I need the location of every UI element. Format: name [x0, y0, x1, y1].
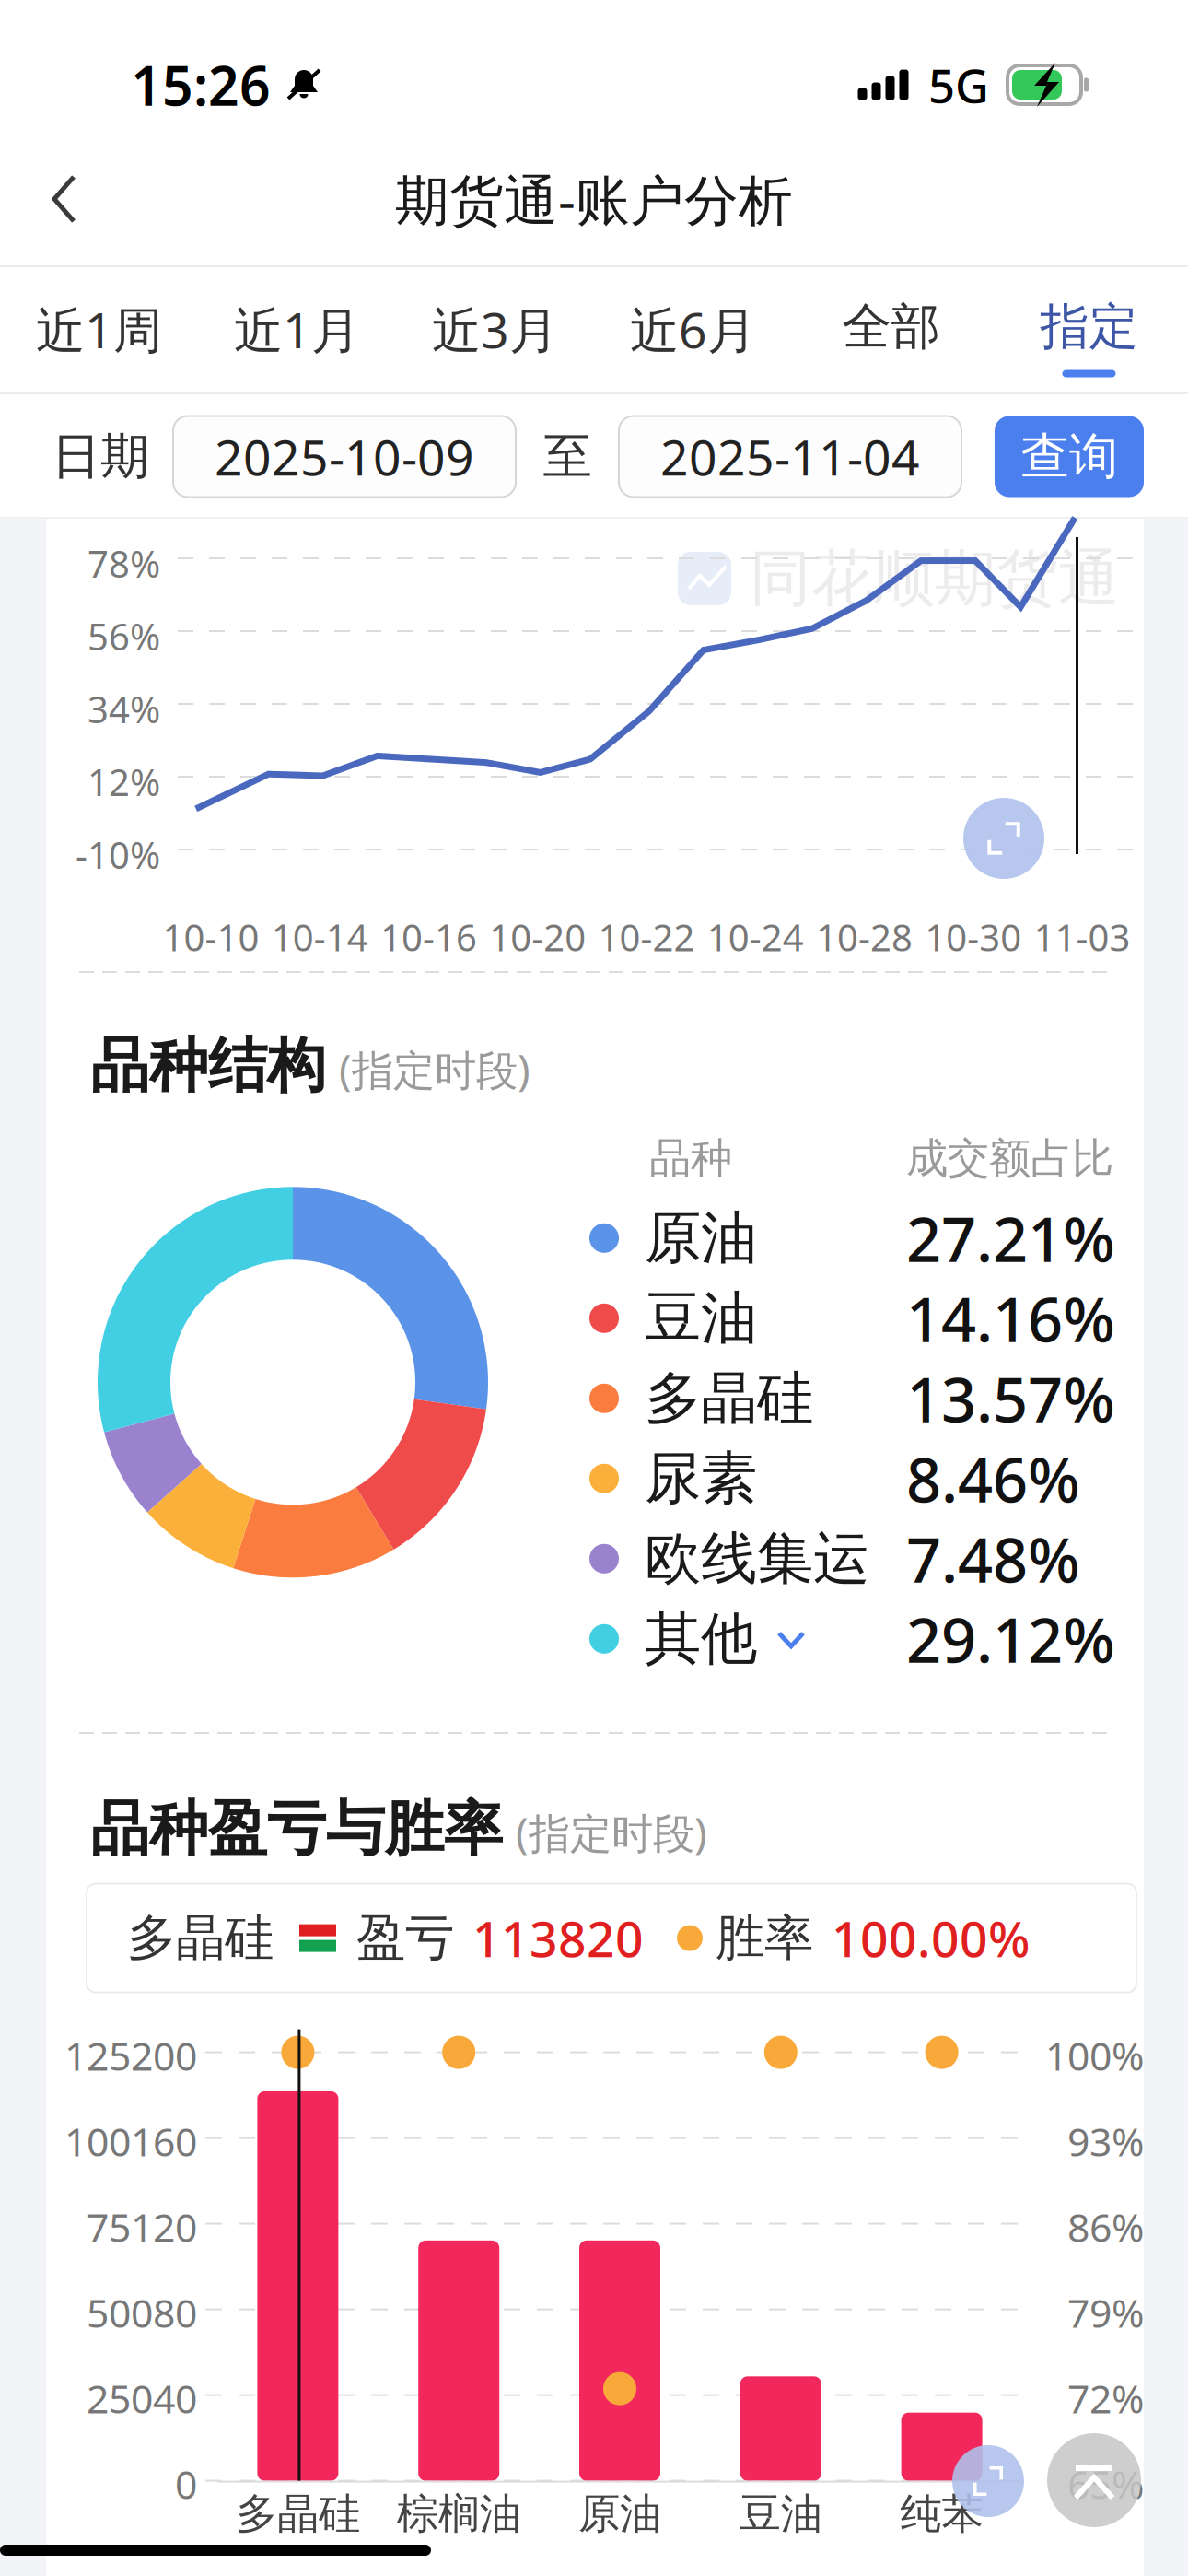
staticText: 豆油	[739, 2488, 822, 2540]
staticText: (指定时段)	[339, 1042, 530, 1097]
staticText: 尿素	[645, 1444, 757, 1513]
staticText: 指定	[1040, 297, 1138, 357]
staticText: 11-03	[1034, 912, 1130, 961]
staticText: 棕榈油	[397, 2488, 521, 2540]
button[interactable]: Fullscreen chart	[952, 2445, 1024, 2517]
staticText: 15:26	[131, 49, 271, 121]
staticText: 10-10	[163, 912, 259, 961]
button[interactable]: 2025-10-09	[173, 416, 516, 497]
staticText: 113820	[472, 1905, 644, 1971]
button[interactable]: 近1月	[198, 267, 396, 394]
staticText: 欧线集运	[645, 1524, 869, 1593]
staticText: 近6月	[630, 297, 756, 362]
staticText: 纯苯	[900, 2488, 983, 2540]
staticText: 93%	[1067, 2115, 1144, 2167]
staticText: 日期	[52, 426, 149, 487]
staticText: 5G	[928, 54, 989, 116]
button[interactable]: 查询	[995, 416, 1144, 497]
staticText: 14.16%	[906, 1277, 1115, 1359]
staticText: 86%	[1067, 2201, 1144, 2253]
button[interactable]: Fullscreen chart	[963, 798, 1044, 879]
staticText: 2025-10-09	[215, 424, 474, 489]
staticText: 胜率	[716, 1908, 813, 1968]
staticText: 125200	[64, 2029, 197, 2082]
staticText: 72%	[1067, 2372, 1144, 2424]
staticText: 多晶硅	[127, 1908, 274, 1968]
button[interactable]: Back	[0, 135, 112, 263]
staticText: 近1月	[234, 297, 360, 362]
staticText: 12%	[87, 757, 160, 806]
staticText: 10-16	[380, 912, 477, 961]
staticText: 10-14	[271, 912, 368, 961]
staticText: 65%	[1067, 2458, 1144, 2510]
staticText: 10-28	[816, 912, 913, 961]
staticText: 多晶硅	[645, 1364, 813, 1433]
staticText: 27.21%	[906, 1197, 1115, 1279]
staticText: 查询	[1020, 426, 1118, 487]
button[interactable]: 全部	[792, 267, 990, 394]
staticText: 13.57%	[906, 1358, 1115, 1439]
staticText: 10-20	[489, 912, 586, 961]
staticText: 2025-11-04	[660, 424, 920, 489]
staticText: 全部	[842, 297, 940, 357]
staticText: 10-22	[598, 912, 695, 961]
staticText: 100%	[1045, 2029, 1144, 2082]
staticText: 7.48%	[906, 1518, 1080, 1599]
staticText: -10%	[76, 830, 160, 879]
staticText: 78%	[87, 539, 160, 588]
staticText: 10-30	[925, 912, 1021, 961]
staticText: 100160	[64, 2115, 197, 2167]
staticText: 79%	[1067, 2286, 1144, 2339]
staticText: 品种结构	[90, 1030, 326, 1102]
staticText: 多晶硅	[236, 2488, 360, 2540]
button[interactable]: Scroll to top	[1047, 2433, 1141, 2527]
staticText: 100.00%	[832, 1905, 1030, 1971]
staticText: 近1周	[36, 297, 162, 362]
staticText: 同花顺期货通	[750, 541, 1120, 616]
staticText: 豆油	[645, 1283, 757, 1353]
staticText: 原油	[578, 2488, 661, 2540]
staticText: 至	[543, 426, 592, 487]
button[interactable]: 近3月	[396, 267, 594, 394]
staticText: 近3月	[432, 297, 558, 362]
staticText: 品种	[649, 1133, 732, 1184]
staticText: 其他	[645, 1604, 757, 1673]
staticText: 品种盈亏与胜率	[90, 1793, 503, 1865]
staticText: 75120	[87, 2201, 197, 2253]
staticText: 期货通-账户分析	[395, 163, 793, 235]
button[interactable]: 2025-11-04	[619, 416, 961, 497]
staticText: 10-24	[707, 912, 804, 961]
staticText: 0	[175, 2458, 197, 2510]
staticText: 56%	[87, 612, 160, 661]
staticText: 29.12%	[906, 1598, 1115, 1680]
staticText: 原油	[645, 1203, 757, 1273]
staticText: 34%	[87, 685, 160, 733]
staticText: 盈亏	[356, 1908, 454, 1968]
staticText: (指定时段)	[516, 1805, 707, 1860]
button[interactable]: 近6月	[594, 267, 792, 394]
button[interactable]: 近1周	[0, 267, 198, 394]
button[interactable]: 指定	[990, 267, 1188, 394]
staticText: 成交额占比	[906, 1133, 1113, 1184]
staticText: 8.46%	[906, 1438, 1080, 1519]
staticText: 50080	[87, 2286, 197, 2339]
staticText: 25040	[87, 2372, 197, 2424]
